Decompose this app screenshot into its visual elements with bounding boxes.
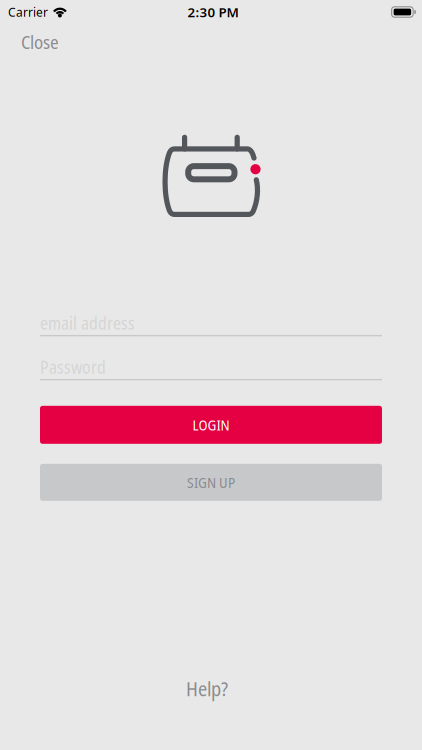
button[interactable]: LOGIN [40, 406, 382, 444]
staticText: Password [40, 355, 106, 379]
staticText: 2:30 PM [187, 3, 238, 21]
staticText: Help? [186, 675, 228, 702]
button[interactable]: Close [0, 20, 80, 63]
staticText: Close [21, 29, 59, 54]
button[interactable]: Help? [168, 666, 254, 711]
staticText: email address [40, 311, 135, 335]
button[interactable]: SIGN UP [40, 464, 382, 501]
staticText: SIGN UP [187, 472, 235, 492]
staticText: LOGIN [192, 415, 229, 435]
staticText: Carrier [8, 4, 48, 20]
